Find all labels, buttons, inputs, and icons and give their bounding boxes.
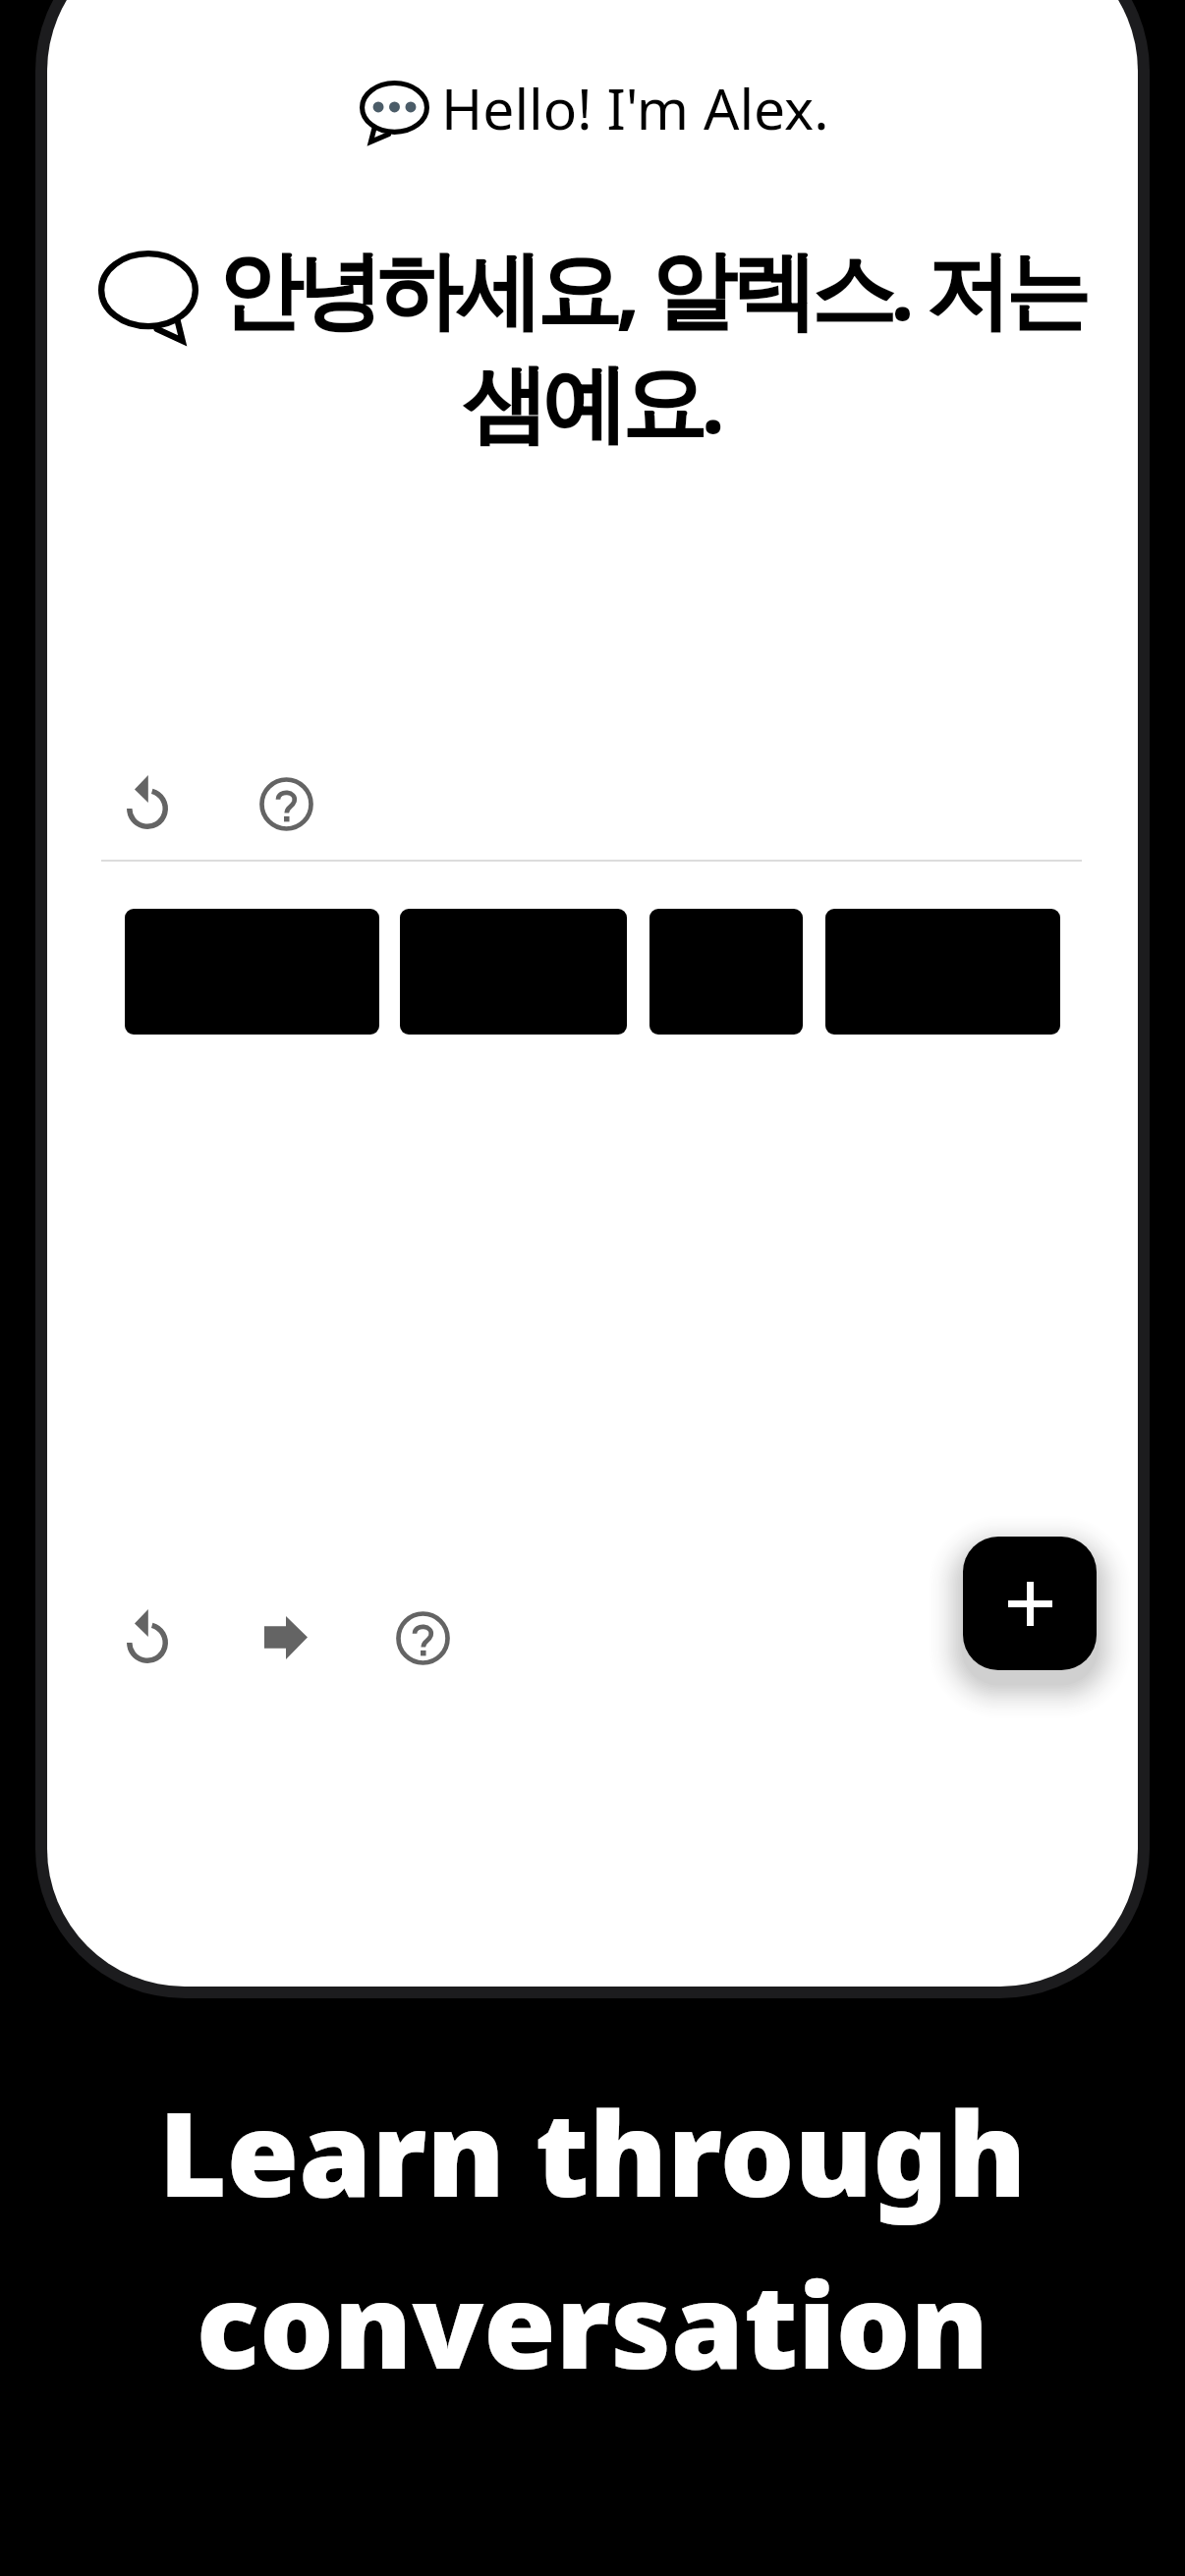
button[interactable]: Help [239, 756, 333, 851]
button[interactable]: Replay [100, 755, 195, 849]
button[interactable]: Word [125, 909, 379, 1035]
button[interactable]: Next [239, 1591, 333, 1685]
staticText: 샘예요. [462, 342, 720, 459]
button[interactable]: Word [649, 909, 803, 1035]
button[interactable]: Word [825, 909, 1060, 1035]
button[interactable]: Add [963, 1537, 1097, 1670]
button[interactable]: Word [400, 909, 627, 1035]
button[interactable]: Replay [100, 1589, 195, 1683]
staticText: Learn through conversation [158, 2072, 1027, 2402]
button[interactable]: Help [375, 1591, 470, 1685]
staticText: Hello! I'm Alex. [441, 70, 829, 146]
staticText: 안녕하세요, 알렉스. 저는 [217, 229, 1085, 346]
